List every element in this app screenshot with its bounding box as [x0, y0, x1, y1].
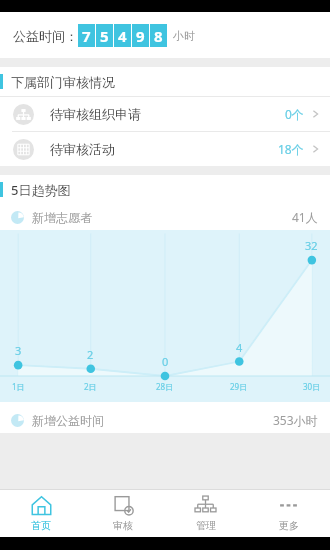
staticText: 小时 [173, 29, 195, 43]
staticText: 9 [136, 26, 145, 46]
staticText: 30日 [303, 381, 321, 392]
staticText: 18个 [278, 141, 304, 157]
staticText: 2日 [84, 381, 97, 392]
staticText: 7 [82, 26, 91, 46]
staticText: 公益时间： [13, 28, 78, 44]
other: 管理 [195, 495, 216, 516]
staticText: 8 [154, 26, 163, 46]
staticText: 4 [236, 340, 243, 355]
staticText: 3 [15, 343, 22, 358]
button[interactable]: 首页 [0, 490, 82, 537]
staticText: 0个 [285, 106, 304, 122]
button[interactable]: 待审核活动 [0, 132, 330, 166]
staticText: 353小时 [273, 412, 318, 428]
other: 首页 [31, 495, 52, 516]
other: 更多 [278, 495, 299, 516]
staticText: 首页 [31, 519, 51, 532]
staticText: 待审核活动 [50, 141, 115, 157]
staticText: 32 [305, 238, 318, 253]
staticText: 1日 [12, 381, 25, 392]
staticText: 审核 [113, 519, 133, 532]
button[interactable]: 更多 [247, 490, 330, 537]
staticText: 2 [87, 347, 94, 362]
staticText: 下属部门审核情况 [11, 74, 115, 90]
button[interactable]: 管理 [164, 490, 247, 537]
staticText: 29日 [230, 381, 248, 392]
button[interactable]: 审核 [82, 490, 164, 537]
staticText: 新增公益时间 [32, 413, 104, 428]
staticText: 0 [162, 354, 169, 369]
staticText: 5 [100, 26, 109, 46]
button[interactable]: 待审核组织申请 [0, 97, 330, 131]
other: 审核 [113, 495, 134, 516]
staticText: 41人 [292, 209, 318, 225]
staticText: 管理 [196, 519, 216, 532]
staticText: 待审核组织申请 [50, 106, 141, 122]
staticText: 更多 [279, 519, 299, 532]
staticText: 新增志愿者 [32, 210, 92, 225]
staticText: 4 [118, 26, 127, 46]
staticText: 5日趋势图 [11, 181, 71, 199]
staticText: 28日 [156, 381, 174, 392]
